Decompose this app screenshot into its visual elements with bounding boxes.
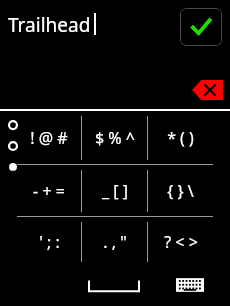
staticText: { } \ [167, 180, 194, 202]
button[interactable]: . , " [82, 218, 147, 266]
button[interactable]: ? < > [148, 218, 213, 266]
staticText: ' ; : [39, 231, 60, 253]
button[interactable]: Backspace [192, 80, 223, 100]
button[interactable]: $ % ^ [82, 112, 147, 164]
button[interactable]: Switch keyboard [176, 276, 204, 294]
staticText: ! @ # [30, 127, 68, 149]
staticText: * ( ) [167, 127, 194, 149]
staticText: Trailhead [8, 12, 91, 38]
button[interactable]: - + = [17, 166, 81, 216]
button[interactable]: _ [ ] [82, 166, 147, 216]
button[interactable]: Space [88, 274, 140, 296]
button[interactable]: ! @ # [17, 112, 81, 164]
button[interactable]: Trailhead [8, 12, 180, 56]
button[interactable]: { } \ [148, 166, 213, 216]
button[interactable]: * ( ) [148, 112, 213, 164]
staticText: $ % ^ [95, 127, 135, 149]
staticText: ? < > [164, 231, 198, 253]
staticText: - + = [33, 180, 65, 202]
staticText: . , " [103, 231, 127, 253]
button[interactable]: ' ; : [17, 218, 81, 266]
button[interactable]: Accept [180, 8, 222, 46]
staticText: _ [ ] [102, 180, 128, 202]
